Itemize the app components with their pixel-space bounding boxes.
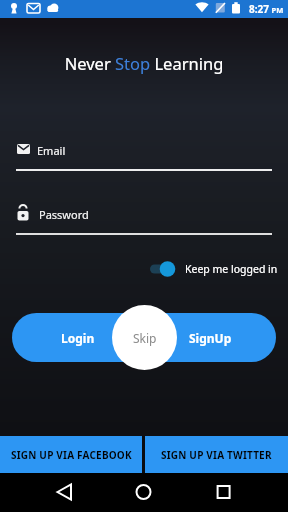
staticText: SIGN UP VIA FACEBOOK xyxy=(11,448,132,462)
staticText: Skip xyxy=(133,330,157,346)
button[interactable]: SIGN UP VIA TWITTER xyxy=(145,436,288,473)
staticText: Password xyxy=(39,207,89,222)
button[interactable]: SignUp xyxy=(160,313,261,362)
staticText: Login xyxy=(61,330,95,346)
button[interactable]: Keep me logged in xyxy=(148,258,278,280)
staticText: SignUp xyxy=(189,330,232,346)
button[interactable] xyxy=(96,473,192,512)
staticText: SIGN UP VIA TWITTER xyxy=(161,448,272,462)
staticText: Keep me logged in xyxy=(185,262,278,276)
button[interactable]: SIGN UP VIA FACEBOOK xyxy=(0,436,142,473)
button[interactable] xyxy=(0,473,96,512)
staticText: Email xyxy=(37,143,66,158)
button[interactable]: Login xyxy=(28,313,128,362)
button[interactable] xyxy=(192,473,288,512)
button[interactable]: Skip xyxy=(112,305,177,370)
staticText: Never Stop Learning xyxy=(0,52,288,74)
staticText: 8:27 PM xyxy=(249,2,284,16)
